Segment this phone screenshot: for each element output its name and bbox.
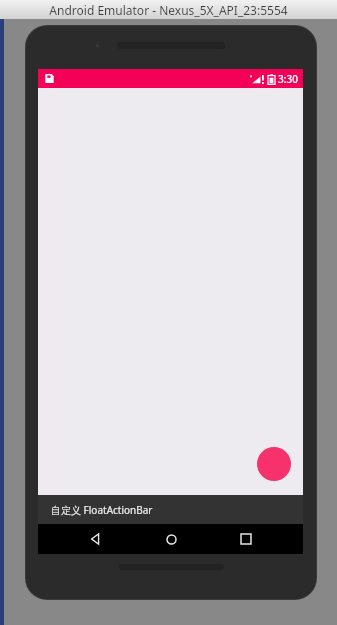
button[interactable]: Add [257, 447, 291, 481]
staticText: 3:30 [278, 72, 298, 86]
button[interactable]: Recents [227, 524, 265, 554]
button[interactable]: Home [152, 524, 190, 554]
button[interactable]: Back [76, 524, 114, 554]
button[interactable]: 自定义 FloatActionBar [38, 495, 303, 524]
staticText: Android Emulator - Nexus_5X_API_23:5554 [49, 2, 288, 18]
staticText: 自定义 FloatActionBar [51, 503, 153, 517]
